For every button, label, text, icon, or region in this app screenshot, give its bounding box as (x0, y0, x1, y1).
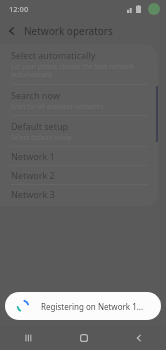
staticText: Select default setup (11, 133, 72, 142)
button[interactable]: Recent apps (0, 326, 56, 350)
staticText: Network operators (24, 24, 113, 38)
button[interactable]: Default setup (0, 116, 158, 146)
button[interactable]: Home (56, 326, 111, 350)
button[interactable]: Navigate up (0, 19, 24, 43)
button[interactable]: Network 3 (0, 185, 158, 203)
button[interactable]: Select automatically (0, 44, 158, 84)
staticText: Network 3 (11, 188, 55, 200)
staticText: Default setup (11, 120, 68, 132)
staticText: Select automatically (11, 49, 96, 61)
button[interactable]: Network 2 (0, 166, 158, 184)
button[interactable]: Search now (0, 85, 158, 115)
staticText: 12:00 (9, 4, 29, 14)
staticText: Network 1 (11, 150, 55, 162)
staticText: Scan for all available networks. (11, 102, 105, 111)
staticText: Search now (11, 89, 60, 101)
button[interactable]: Back (111, 326, 166, 350)
staticText: Network 2 (11, 169, 55, 181)
button[interactable]: Network 1 (0, 147, 158, 165)
staticText: Registering on Network 1... (41, 301, 144, 312)
